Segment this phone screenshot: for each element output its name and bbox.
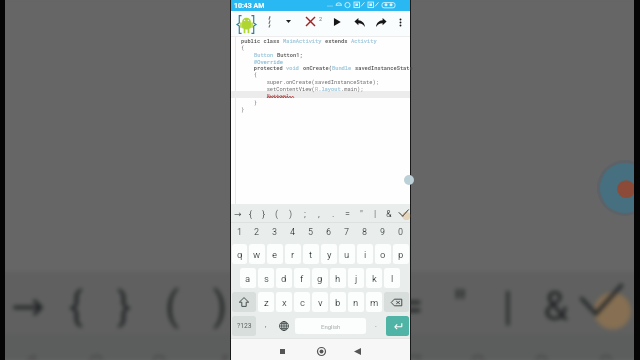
button[interactable]: d (276, 268, 292, 288)
button[interactable]: 3 (266, 223, 284, 242)
staticText: } (98, 283, 150, 330)
staticText: 3 (272, 227, 278, 238)
button[interactable]: n (348, 292, 364, 312)
button[interactable]: m (366, 292, 382, 312)
button[interactable]: u (339, 244, 355, 264)
button[interactable]: y (321, 244, 337, 264)
button[interactable]: w (249, 244, 265, 264)
button[interactable]: ; (298, 204, 312, 222)
button[interactable]: p (393, 244, 409, 264)
staticText: | (374, 209, 377, 220)
staticText: } (241, 106, 245, 113)
button[interactable]: Undo (351, 14, 367, 30)
button[interactable]: q (232, 244, 247, 264)
button[interactable]: r (285, 244, 301, 264)
staticText: h (335, 273, 341, 284)
button[interactable]: k (366, 268, 382, 288)
staticText: i (364, 249, 367, 260)
staticText: a (245, 273, 251, 284)
button[interactable]: Accept suggestion (396, 204, 410, 222)
button[interactable]: . (326, 204, 340, 222)
staticText: 9 (380, 227, 386, 238)
button[interactable]: 7 (338, 223, 356, 242)
button[interactable]: 0 (392, 223, 410, 242)
staticText: Button (254, 51, 277, 58)
button[interactable]: ) (284, 204, 298, 222)
button[interactable]: f (294, 268, 310, 288)
button[interactable]: & (382, 204, 396, 222)
button[interactable]: AIDE (236, 14, 256, 34)
button[interactable]: x (276, 292, 292, 312)
button[interactable]: e (267, 244, 283, 264)
button[interactable]: ?123 (232, 316, 256, 336)
staticText: z (264, 297, 269, 308)
staticText: y (327, 249, 332, 260)
staticText: g (317, 273, 323, 284)
button[interactable]: l (384, 268, 400, 288)
staticText: " (434, 283, 486, 330)
button[interactable]: 1 (231, 223, 248, 242)
button[interactable]: Select file (281, 14, 295, 28)
button[interactable]: = (340, 204, 354, 222)
button[interactable]: c (294, 292, 310, 312)
button[interactable]: a (240, 268, 256, 288)
staticText: → (234, 209, 242, 219)
button[interactable]: → (231, 204, 244, 222)
staticText: m (370, 297, 379, 308)
button[interactable]: 5 (302, 223, 320, 242)
button[interactable]: o (375, 244, 391, 264)
button[interactable]: Run (329, 14, 344, 29)
button[interactable]: Errors (303, 14, 318, 29)
button[interactable]: 8 (356, 223, 374, 242)
button[interactable]: t (303, 244, 319, 264)
staticText: r (291, 249, 295, 260)
button[interactable]: s (258, 268, 274, 288)
button[interactable]: v (312, 292, 328, 312)
button[interactable]: English (295, 318, 366, 334)
button[interactable]: j (348, 268, 364, 288)
button[interactable]: More options (392, 14, 408, 30)
button[interactable]: g (312, 268, 328, 288)
button[interactable]: Shift (232, 292, 256, 312)
button[interactable]: Change language (274, 314, 294, 338)
button[interactable]: Back (348, 342, 366, 360)
staticText: w (253, 249, 261, 260)
staticText: MainActivity (283, 37, 325, 44)
staticText: @Override (254, 58, 283, 65)
button[interactable]: 6 (320, 223, 338, 242)
staticText: c (300, 297, 305, 308)
button[interactable]: Redo (373, 14, 389, 30)
button[interactable]: " (354, 204, 368, 222)
button[interactable]: z (258, 292, 274, 312)
button[interactable]: 2 (248, 223, 266, 242)
button[interactable]: Recents (273, 342, 291, 360)
button[interactable]: 9 (374, 223, 392, 242)
button[interactable]: h (330, 268, 346, 288)
button[interactable]: | (368, 204, 382, 222)
staticText: b (335, 297, 341, 308)
button[interactable]: , (312, 204, 326, 222)
button[interactable]: 4 (284, 223, 302, 242)
staticText: s (264, 273, 269, 284)
staticText: R.layout (315, 85, 341, 92)
staticText: extends (325, 37, 351, 44)
button[interactable]: { (244, 204, 257, 222)
button[interactable]: , (257, 314, 274, 338)
button[interactable]: Enter (386, 316, 409, 336)
button[interactable]: ( (270, 204, 284, 222)
button[interactable]: Project file (262, 14, 276, 28)
button[interactable]: i (357, 244, 373, 264)
staticText: , (290, 283, 342, 330)
button[interactable]: Scroll handle (404, 175, 414, 185)
staticText: n (353, 297, 359, 308)
staticText: . (332, 209, 335, 220)
staticText: Button1; (277, 51, 303, 58)
button[interactable]: } (257, 204, 270, 222)
staticText: protected (241, 64, 286, 71)
staticText: & (386, 209, 392, 220)
button[interactable]: Home (312, 342, 330, 360)
button[interactable]: Backspace (384, 292, 409, 312)
button[interactable]: b (330, 292, 346, 312)
